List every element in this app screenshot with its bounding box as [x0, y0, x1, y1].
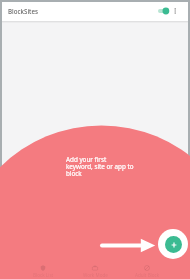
staticText: Add your first keyword, site or app to b…	[66, 155, 134, 178]
staticText: BlockSites	[8, 7, 38, 15]
staticText: Block List	[33, 272, 54, 278]
button[interactable]: Toggle blocking	[154, 2, 172, 22]
button[interactable]: Adult Block	[121, 264, 173, 279]
staticText: Adult Block	[135, 272, 160, 278]
staticText: Work Mode	[83, 272, 108, 278]
button[interactable]: Work Mode	[69, 264, 121, 279]
button[interactable]: Add	[158, 229, 188, 259]
button[interactable]: More options	[169, 2, 182, 22]
button[interactable]: Block List	[17, 264, 69, 279]
